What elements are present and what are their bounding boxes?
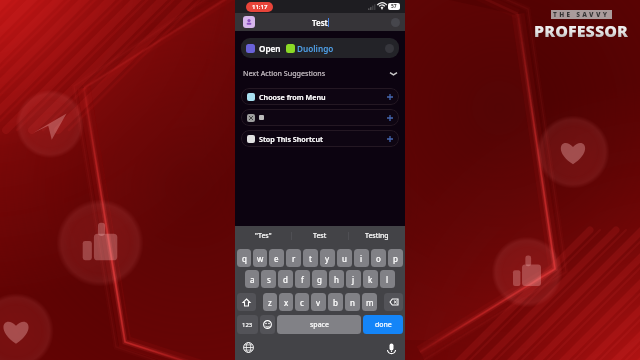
button[interactable]: j: [346, 270, 361, 288]
button[interactable]: [241, 109, 399, 126]
staticText: Open: [259, 43, 281, 54]
button[interactable]: Stop This Shortcut: [241, 130, 399, 147]
button[interactable]: p: [388, 249, 403, 267]
button[interactable]: c: [295, 293, 309, 311]
button[interactable]: s: [261, 270, 276, 288]
button[interactable]: g: [312, 270, 327, 288]
button[interactable]: q: [237, 249, 251, 267]
staticText: z: [268, 297, 272, 308]
staticText: y: [325, 253, 330, 264]
button[interactable]: e: [269, 249, 284, 267]
button[interactable]: l: [380, 270, 395, 288]
staticText: u: [342, 253, 347, 264]
staticText: Test: [313, 231, 327, 241]
staticText: r: [292, 253, 296, 264]
staticText: f: [301, 274, 304, 285]
button[interactable]: t: [303, 249, 318, 267]
staticText: Duolingo: [297, 43, 334, 54]
staticText: l: [386, 274, 389, 285]
button[interactable]: y: [320, 249, 335, 267]
button[interactable]: h: [329, 270, 344, 288]
staticText: g: [317, 274, 322, 285]
staticText: b: [333, 297, 338, 308]
button[interactable]: d: [278, 270, 293, 288]
button[interactable]: o: [371, 249, 386, 267]
button[interactable]: space: [277, 315, 361, 334]
staticText: 11:17: [252, 3, 268, 11]
staticText: Stop This Shortcut: [259, 134, 323, 144]
staticText: i: [360, 253, 363, 264]
staticText: n: [350, 297, 355, 308]
button[interactable]: "Tes": [235, 226, 291, 246]
button[interactable]: m: [362, 293, 377, 311]
button[interactable]: Clear: [391, 18, 400, 27]
staticText: PROFESSOR: [534, 20, 629, 42]
staticText: t: [309, 253, 312, 264]
staticText: Testing: [365, 231, 389, 241]
button[interactable]: v: [311, 293, 326, 311]
staticText: c: [300, 297, 304, 308]
staticText: x: [284, 297, 289, 308]
staticText: done: [375, 320, 392, 330]
button[interactable]: Open: [241, 38, 399, 58]
button[interactable]: i: [354, 249, 369, 267]
staticText: Next Action Suggestions: [243, 68, 326, 78]
button[interactable]: u: [337, 249, 352, 267]
button[interactable]: k: [363, 270, 378, 288]
button[interactable]: del: [384, 293, 403, 311]
button[interactable]: done: [363, 315, 403, 334]
button[interactable]: Shortcut icon: [243, 16, 255, 28]
staticText: Test: [312, 17, 328, 28]
staticText: d: [283, 274, 288, 285]
staticText: j: [352, 274, 355, 285]
button[interactable]: a: [245, 270, 259, 288]
staticText: space: [310, 320, 329, 330]
button[interactable]: Choose from Menu: [241, 88, 399, 105]
button[interactable]: r: [286, 249, 301, 267]
button[interactable]: b: [328, 293, 343, 311]
staticText: w: [257, 253, 264, 264]
button[interactable]: Change keyboard: [243, 342, 254, 353]
button[interactable]: z: [263, 293, 277, 311]
staticText: "Tes": [255, 231, 272, 241]
button[interactable]: Next Action Suggestions: [243, 64, 398, 82]
button[interactable]: f: [295, 270, 310, 288]
staticText: h: [334, 274, 339, 285]
staticText: 57: [391, 3, 397, 10]
button[interactable]: shift: [237, 293, 256, 311]
button[interactable]: x: [279, 293, 293, 311]
button[interactable]: Test: [292, 226, 348, 246]
button[interactable]: Dictate: [386, 342, 397, 353]
staticText: Choose from Menu: [259, 92, 326, 102]
staticText: q: [242, 253, 247, 264]
staticText: m: [366, 297, 374, 308]
button[interactable]: n: [345, 293, 360, 311]
button[interactable]: 123: [237, 315, 258, 334]
staticText: v: [316, 297, 321, 308]
staticText: p: [393, 253, 398, 264]
button[interactable]: w: [253, 249, 267, 267]
staticText: e: [274, 253, 279, 264]
staticText: o: [376, 253, 381, 264]
button[interactable]: emoji: [260, 315, 275, 334]
button[interactable]: Testing: [349, 226, 405, 246]
staticText: 123: [242, 321, 253, 329]
staticText: s: [267, 274, 271, 285]
staticText: a: [250, 274, 255, 285]
staticText: k: [368, 274, 373, 285]
staticText: THE SAVVY: [553, 10, 610, 19]
